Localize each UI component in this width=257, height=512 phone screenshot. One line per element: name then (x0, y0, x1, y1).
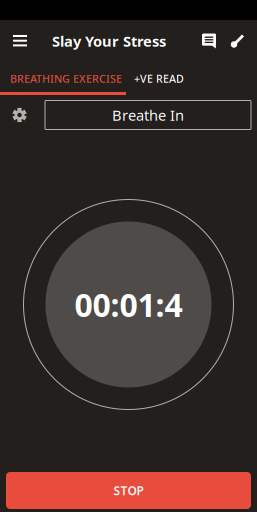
button[interactable]: Theme (223, 20, 252, 62)
button[interactable]: Breathe In (45, 100, 251, 129)
staticText: +VE READ (134, 71, 184, 86)
staticText: 00:01:4 (74, 283, 182, 326)
staticText: Slay Your Stress (52, 31, 166, 51)
staticText: Breathe In (112, 105, 184, 125)
button[interactable]: +VE READ (126, 62, 192, 95)
button[interactable]: Settings (9, 102, 30, 128)
staticText: STOP (113, 482, 143, 498)
button[interactable]: STOP (6, 472, 251, 509)
button[interactable]: Messages (195, 20, 223, 62)
staticText: BREATHING EXERCISE (10, 71, 122, 86)
button[interactable]: Menu (0, 20, 40, 62)
button[interactable]: BREATHING EXERCISE (0, 62, 126, 95)
